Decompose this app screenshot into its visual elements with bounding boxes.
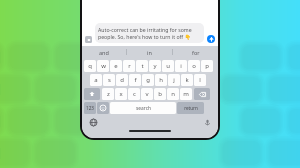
staticText: d [120, 76, 124, 84]
button[interactable]: q [84, 60, 96, 72]
button[interactable]: k [181, 74, 193, 86]
staticText: a [94, 76, 98, 84]
button[interactable]: d [116, 74, 128, 86]
staticText: w [101, 62, 106, 70]
button[interactable]: w [97, 60, 109, 72]
staticText: h [159, 76, 163, 84]
button[interactable]: Shift [84, 88, 100, 100]
staticText: f [134, 76, 137, 84]
button[interactable]: o [188, 60, 200, 72]
button[interactable]: f [129, 74, 141, 86]
staticText: z [107, 90, 110, 98]
staticText: r [128, 62, 131, 70]
button[interactable]: i [175, 60, 187, 72]
staticText: x [119, 90, 123, 98]
button[interactable]: j [168, 74, 180, 86]
staticText: return [184, 105, 198, 111]
button[interactable]: b [154, 88, 166, 100]
staticText: t [141, 62, 144, 70]
button[interactable]: Change keyboard [88, 117, 98, 127]
button[interactable]: s [103, 74, 115, 86]
staticText: and [99, 49, 109, 56]
button[interactable]: for [173, 46, 218, 58]
button[interactable]: search [110, 102, 176, 114]
staticText: n [171, 90, 175, 98]
button[interactable]: g [142, 74, 154, 86]
button[interactable]: Auto-correct can be irritating for some … [98, 26, 201, 40]
staticText: i [180, 62, 182, 70]
button[interactable]: n [167, 88, 179, 100]
button[interactable]: l [194, 74, 206, 86]
button[interactable]: in [127, 46, 172, 58]
button[interactable]: e [110, 60, 122, 72]
staticText: m [183, 90, 189, 98]
staticText: b [158, 90, 162, 98]
staticText: c [133, 90, 136, 98]
staticText: p [205, 62, 209, 70]
button[interactable]: u [162, 60, 174, 72]
button[interactable]: m [180, 88, 192, 100]
staticText: q [88, 62, 92, 70]
staticText: for [192, 49, 200, 56]
button[interactable]: Dictate [202, 117, 212, 127]
button[interactable]: c [128, 88, 140, 100]
staticText: s [108, 76, 111, 84]
button[interactable]: 123 [84, 102, 96, 114]
button[interactable]: y [149, 60, 161, 72]
staticText: o [192, 62, 196, 70]
button[interactable]: v [141, 88, 153, 100]
staticText: v [145, 90, 149, 98]
button[interactable]: Backspace [194, 88, 210, 100]
staticText: k [185, 76, 189, 84]
button[interactable]: h [155, 74, 167, 86]
button[interactable]: p [201, 60, 213, 72]
button[interactable]: r [123, 60, 135, 72]
button[interactable]: x [115, 88, 127, 100]
staticText: Auto-correct can be irritating for some … [98, 26, 201, 40]
button[interactable]: return [177, 102, 204, 114]
button[interactable]: t [136, 60, 148, 72]
button[interactable]: Emoji [97, 102, 109, 114]
staticText: 123 [86, 105, 94, 111]
button[interactable]: z [102, 88, 114, 100]
button[interactable]: Send [207, 35, 215, 43]
button[interactable]: and [82, 46, 126, 58]
staticText: search [136, 105, 151, 112]
staticText: u [166, 62, 170, 70]
button[interactable]: Apps [85, 36, 92, 43]
staticText: y [153, 62, 157, 70]
staticText: e [114, 62, 118, 70]
button[interactable]: a [90, 74, 102, 86]
staticText: g [146, 76, 150, 84]
staticText: in [147, 49, 152, 56]
staticText: j [173, 76, 175, 84]
staticText: l [199, 76, 201, 84]
